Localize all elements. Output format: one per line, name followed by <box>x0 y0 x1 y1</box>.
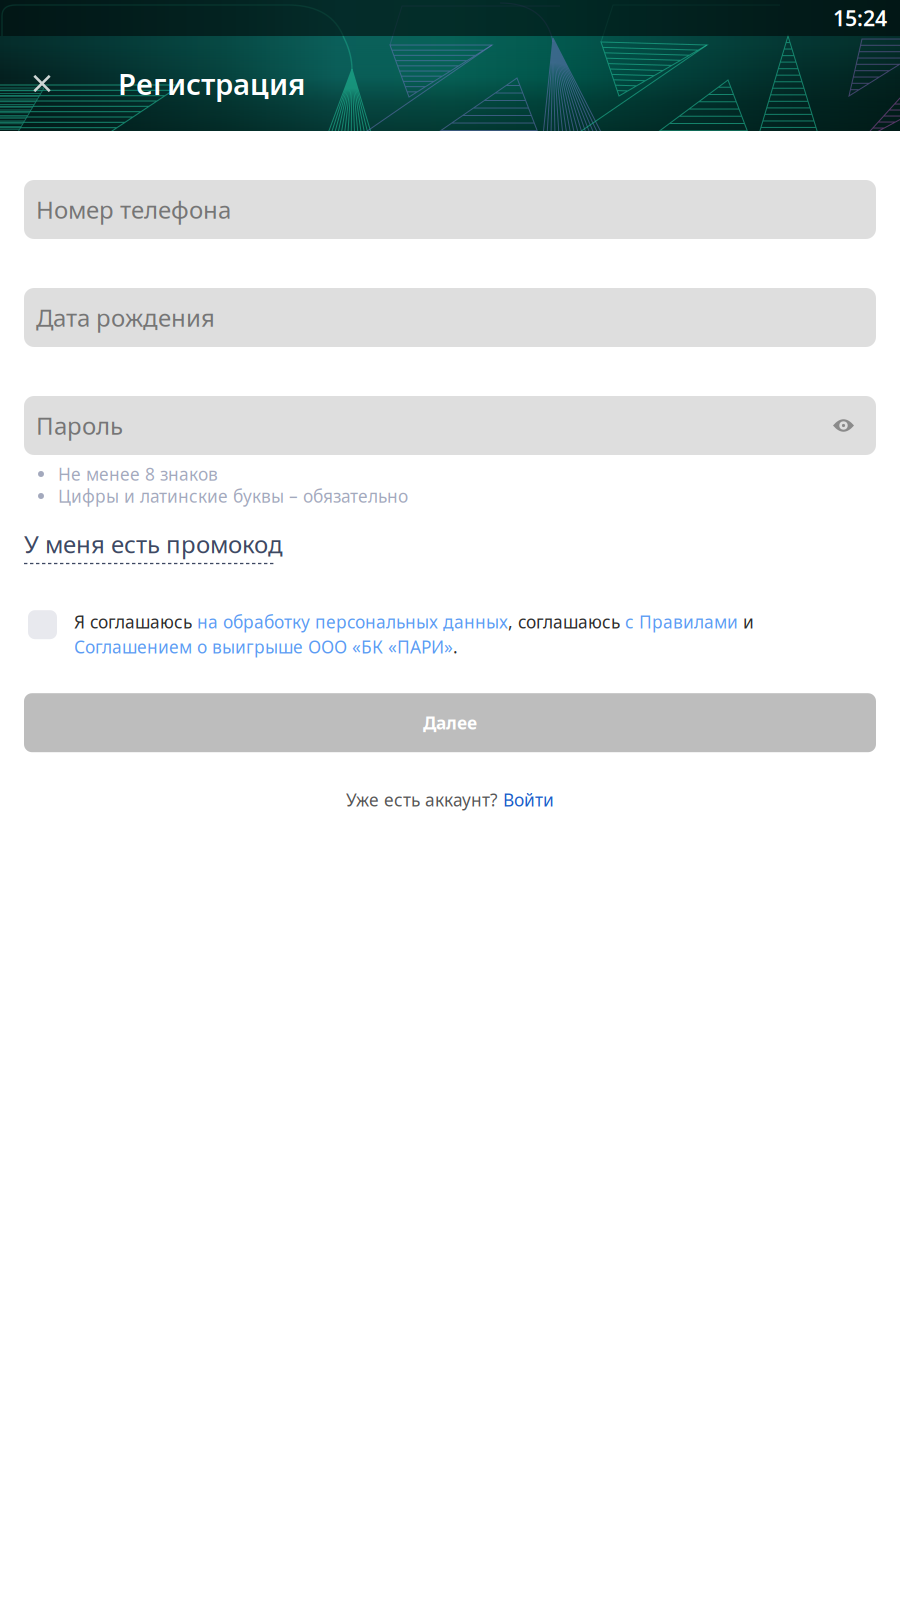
button[interactable]: Close <box>16 57 68 109</box>
button[interactable]: Пароль <box>24 396 876 455</box>
staticText: Не менее 8 знаков <box>58 462 218 485</box>
staticText: Я соглашаюсь на обработку персональных д… <box>74 610 754 633</box>
staticText: Пароль <box>36 410 123 441</box>
button[interactable]: Войти <box>503 788 554 811</box>
staticText: Дата рождения <box>36 302 215 333</box>
button[interactable]: Accept terms <box>28 610 57 639</box>
button[interactable]: Далее <box>24 693 876 752</box>
staticText: Далее <box>423 711 477 734</box>
button[interactable]: Дата рождения <box>24 288 876 347</box>
staticText: Уже есть аккаунт? <box>346 788 503 811</box>
staticText: Войти <box>503 788 554 811</box>
staticText: Регистрация <box>118 64 305 103</box>
button[interactable]: Номер телефона <box>24 180 876 239</box>
staticText: Цифры и латинские буквы – обязательно <box>58 484 408 507</box>
staticText: Номер телефона <box>36 194 231 225</box>
staticText: Соглашением о выигрыше ООО «БК «ПАРИ». <box>74 635 458 658</box>
staticText: 15:24 <box>833 4 887 32</box>
staticText: У меня есть промокод <box>24 528 283 560</box>
button[interactable]: У меня есть промокод <box>24 528 283 564</box>
